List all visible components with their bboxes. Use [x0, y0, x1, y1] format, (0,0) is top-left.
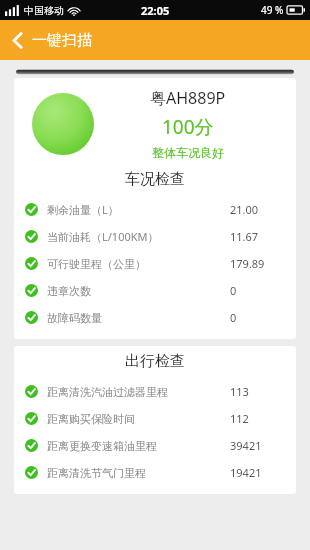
button[interactable]: 剩余油量（L）	[14, 196, 296, 223]
staticText: 0	[230, 283, 237, 298]
staticText: 出行检查	[125, 352, 185, 371]
staticText: 一键扫描	[32, 31, 92, 50]
other: Back	[12, 32, 23, 49]
staticText: 车况检查	[125, 170, 185, 189]
button[interactable]: 距离购买保险时间	[14, 405, 296, 432]
staticText: 距离清洗节气门里程	[47, 466, 146, 480]
staticText: 0	[230, 310, 237, 325]
staticText: 112	[230, 411, 249, 426]
staticText: 故障码数量	[47, 311, 102, 325]
button[interactable]: 距离更换变速箱油里程	[14, 432, 296, 459]
staticText: 粤AH889P	[150, 87, 226, 109]
staticText: 113	[230, 384, 249, 399]
staticText: 距离更换变速箱油里程	[47, 439, 157, 453]
staticText: 19421	[230, 465, 262, 480]
staticText: 11.67	[230, 229, 259, 244]
staticText: 39421	[230, 438, 262, 453]
staticText: 剩余油量（L）	[47, 202, 119, 217]
button[interactable]: 距离清洗节气门里程	[14, 459, 296, 486]
button[interactable]: 违章次数	[14, 277, 296, 304]
staticText: 179.89	[230, 256, 265, 271]
staticText: 距离购买保险时间	[47, 412, 135, 426]
button[interactable]: 可行驶里程（公里）	[14, 250, 296, 277]
button[interactable]: 当前油耗（L/100KM）	[14, 223, 296, 250]
staticText: 距离清洗汽油过滤器里程	[47, 385, 168, 399]
staticText: 整体车况良好	[152, 145, 224, 160]
staticText: 违章次数	[47, 284, 91, 298]
staticText: 49 %	[261, 3, 284, 17]
staticText: 100分	[162, 114, 214, 140]
button[interactable]: 距离清洗汽油过滤器里程	[14, 378, 296, 405]
button[interactable]: Back	[0, 25, 102, 56]
button[interactable]: 故障码数量	[14, 304, 296, 331]
staticText: 可行驶里程（公里）	[47, 257, 146, 271]
staticText: 21.00	[230, 202, 259, 217]
staticText: 22:05	[141, 3, 170, 18]
staticText: 当前油耗（L/100KM）	[47, 229, 159, 244]
staticText: 中国移动	[24, 4, 64, 17]
